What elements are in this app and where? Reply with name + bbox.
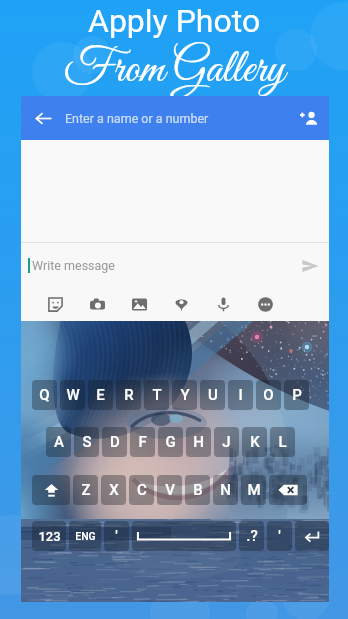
staticText: E xyxy=(96,386,105,404)
staticText: From Gallery xyxy=(64,41,285,100)
button[interactable]: ' xyxy=(267,521,292,551)
button[interactable]: E xyxy=(88,380,113,410)
staticText: A xyxy=(54,433,64,451)
button[interactable]: Location xyxy=(173,288,189,321)
other: Backspace xyxy=(278,483,298,497)
button[interactable]: Y xyxy=(172,380,197,410)
staticText: D xyxy=(110,433,120,451)
button[interactable]: Backspace xyxy=(269,475,307,505)
button[interactable]: Add contact xyxy=(289,96,329,140)
button[interactable]: F xyxy=(130,427,155,457)
staticText: .? xyxy=(246,527,258,545)
button[interactable]: O xyxy=(256,380,281,410)
button[interactable]: H xyxy=(186,427,211,457)
staticText: Write message xyxy=(32,258,296,273)
other: Shift xyxy=(44,483,59,498)
button[interactable]: N xyxy=(213,475,238,505)
staticText: Z xyxy=(81,481,91,499)
staticText: X xyxy=(109,481,119,499)
button[interactable]: C xyxy=(129,475,154,505)
staticText: V xyxy=(165,481,175,499)
button[interactable]: X xyxy=(101,475,126,505)
button[interactable]: M xyxy=(241,475,266,505)
staticText: T xyxy=(152,386,162,404)
other: Enter xyxy=(304,528,320,544)
button[interactable]: K xyxy=(242,427,267,457)
staticText: C xyxy=(137,481,147,499)
button[interactable]: Enter xyxy=(295,521,329,551)
button[interactable]: Shift xyxy=(32,475,70,505)
button[interactable]: R xyxy=(116,380,141,410)
button[interactable]: V xyxy=(157,475,182,505)
staticText: U xyxy=(208,386,218,404)
staticText: Q xyxy=(39,386,50,404)
staticText: W xyxy=(66,386,80,404)
staticText: H xyxy=(193,433,204,451)
button[interactable]: Back xyxy=(21,96,65,140)
button[interactable]: Emoji xyxy=(47,288,63,321)
button[interactable]: S xyxy=(74,427,99,457)
button[interactable] xyxy=(132,521,236,551)
button[interactable]: I xyxy=(228,380,253,410)
button[interactable]: W xyxy=(60,380,85,410)
button[interactable]: L xyxy=(270,427,295,457)
staticText: J xyxy=(222,433,231,451)
staticText: M xyxy=(247,481,261,499)
staticText: N xyxy=(220,481,231,499)
button[interactable]: ' xyxy=(104,521,129,551)
button[interactable]: Send xyxy=(296,252,324,280)
staticText: ' xyxy=(115,527,118,545)
staticText: F xyxy=(138,433,147,451)
button[interactable]: P xyxy=(284,380,309,410)
button[interactable]: Voice xyxy=(215,288,231,321)
button[interactable]: .? xyxy=(239,521,264,551)
button[interactable]: Z xyxy=(73,475,98,505)
button[interactable]: D xyxy=(102,427,127,457)
staticText: R xyxy=(124,386,134,404)
button[interactable]: Q xyxy=(32,380,57,410)
button[interactable]: A xyxy=(46,427,71,457)
staticText: K xyxy=(250,433,260,451)
button[interactable]: More xyxy=(257,288,273,321)
button[interactable]: 123 xyxy=(32,521,66,551)
staticText: Y xyxy=(180,386,190,404)
button[interactable]: J xyxy=(214,427,239,457)
staticText: L xyxy=(278,433,287,451)
button[interactable]: ENG xyxy=(69,521,101,551)
staticText: I xyxy=(238,386,243,404)
button[interactable]: T xyxy=(144,380,169,410)
button[interactable]: B xyxy=(185,475,210,505)
staticText: S xyxy=(82,433,92,451)
staticText: 123 xyxy=(38,529,61,544)
button[interactable]: G xyxy=(158,427,183,457)
staticText: P xyxy=(292,386,302,404)
staticText: Enter a name or a number xyxy=(65,111,289,126)
button[interactable]: Gallery xyxy=(131,288,147,321)
staticText: B xyxy=(193,481,203,499)
staticText: Apply Photo xyxy=(88,2,261,40)
button[interactable]: Camera xyxy=(89,288,105,321)
staticText: ' xyxy=(278,527,281,545)
button[interactable]: U xyxy=(200,380,225,410)
staticText: O xyxy=(263,386,274,404)
staticText: G xyxy=(165,433,176,451)
staticText: ENG xyxy=(75,530,96,542)
